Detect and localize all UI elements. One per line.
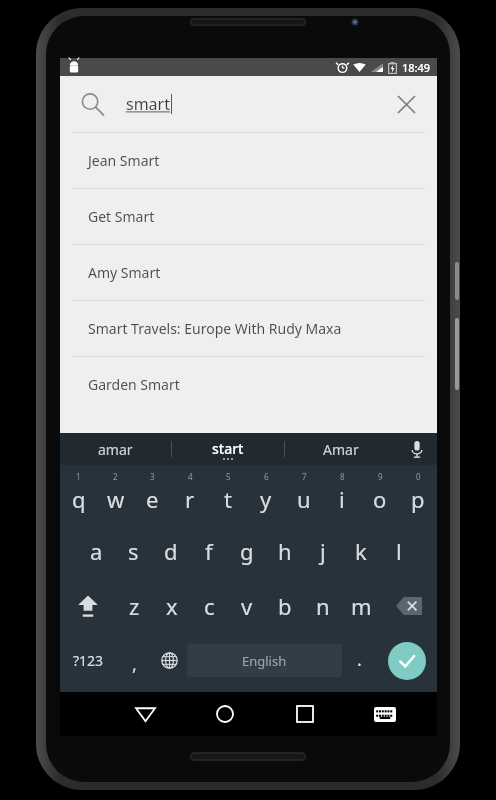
staticText: y <box>260 484 272 514</box>
staticText: u <box>297 484 311 514</box>
staticText: 3 <box>150 471 155 482</box>
button[interactable]: Get Smart <box>60 189 437 244</box>
button[interactable]: 8 <box>323 468 361 523</box>
staticText: v <box>241 591 253 621</box>
button[interactable]: 3 <box>134 468 171 523</box>
staticText: l <box>396 536 402 566</box>
button[interactable]: 5 <box>209 468 247 523</box>
button[interactable]: amar <box>60 433 171 465</box>
staticText: g <box>240 536 254 566</box>
button[interactable]: b <box>266 578 304 633</box>
staticText: p <box>411 484 425 514</box>
staticText: k <box>355 536 367 566</box>
staticText: , <box>132 652 137 677</box>
staticText: ?123 <box>73 651 104 670</box>
button[interactable]: Smart Travels: Europe With Rudy Maxa <box>60 301 437 356</box>
button[interactable]: v <box>228 578 266 633</box>
staticText: Get Smart <box>88 207 155 226</box>
staticText: i <box>339 484 345 514</box>
staticText: . <box>357 647 362 672</box>
staticText: 6 <box>264 471 269 482</box>
staticText: 4 <box>188 471 193 482</box>
staticText: t <box>224 484 232 514</box>
button[interactable]: 6 <box>247 468 285 523</box>
button[interactable]: c <box>190 578 228 633</box>
button[interactable]: j <box>304 523 342 578</box>
button[interactable]: Done <box>377 633 437 688</box>
button[interactable]: Recent apps <box>265 692 345 736</box>
button[interactable]: g <box>228 523 266 578</box>
button[interactable]: z <box>116 578 153 633</box>
button[interactable]: Search <box>60 76 437 132</box>
staticText: q <box>72 484 86 514</box>
button[interactable]: 0 <box>399 468 437 523</box>
staticText: Jean Smart <box>88 151 160 170</box>
button[interactable]: Back <box>105 692 185 736</box>
button[interactable]: 9 <box>361 468 399 523</box>
button[interactable]: Amy Smart <box>60 245 437 300</box>
button[interactable]: Voice input <box>397 433 437 465</box>
staticText: j <box>320 536 326 566</box>
button[interactable]: d <box>152 523 190 578</box>
button[interactable]: ?123 <box>60 633 117 688</box>
staticText: Smart Travels: Europe With Rudy Maxa <box>88 319 342 338</box>
staticText: a <box>90 536 103 566</box>
staticText: b <box>278 591 292 621</box>
staticText: s <box>128 536 139 566</box>
staticText: start <box>212 439 244 458</box>
staticText: 1 <box>76 471 81 482</box>
staticText: w <box>107 484 125 514</box>
staticText: x <box>166 591 178 621</box>
staticText: 7 <box>302 471 307 482</box>
staticText: r <box>185 484 195 514</box>
button[interactable]: 2 <box>97 468 134 523</box>
staticText: 0 <box>416 471 421 482</box>
button[interactable]: , <box>117 633 152 688</box>
button[interactable]: Amar <box>285 433 397 465</box>
staticText: d <box>164 536 178 566</box>
button[interactable]: 7 <box>285 468 323 523</box>
button[interactable]: Shift <box>60 578 116 633</box>
staticText: English <box>242 652 287 670</box>
staticText: 18:49 <box>402 60 431 75</box>
staticText: m <box>351 591 372 621</box>
button[interactable]: 4 <box>171 468 209 523</box>
staticText: h <box>278 536 292 566</box>
button[interactable]: x <box>153 578 190 633</box>
staticText: Amy Smart <box>88 263 161 282</box>
button[interactable]: English <box>187 644 342 677</box>
button[interactable]: start <box>172 433 284 465</box>
staticText: Garden Smart <box>88 375 180 394</box>
staticText: o <box>373 484 387 514</box>
staticText: e <box>146 484 159 514</box>
button[interactable]: Clear search <box>389 87 423 121</box>
staticText: z <box>129 591 140 621</box>
button[interactable]: m <box>342 578 380 633</box>
button[interactable]: Switch keyboard <box>345 692 425 736</box>
button[interactable]: Jean Smart <box>60 133 437 188</box>
staticText: Amar <box>323 440 359 459</box>
button[interactable]: Backspace <box>380 578 437 633</box>
staticText: 8 <box>340 471 345 482</box>
button[interactable]: k <box>342 523 380 578</box>
staticText: smart <box>126 93 170 115</box>
staticText: n <box>316 591 330 621</box>
staticText: 9 <box>378 471 383 482</box>
button[interactable]: . <box>342 633 377 688</box>
button[interactable]: a <box>78 523 115 578</box>
button[interactable]: Change language <box>152 633 187 688</box>
staticText: amar <box>98 440 133 459</box>
button[interactable]: f <box>190 523 228 578</box>
button[interactable]: Home <box>185 692 265 736</box>
staticText: 5 <box>226 471 231 482</box>
button[interactable]: h <box>266 523 304 578</box>
button[interactable]: s <box>115 523 152 578</box>
button[interactable]: n <box>304 578 342 633</box>
button[interactable]: Garden Smart <box>60 357 437 412</box>
staticText: 2 <box>113 471 118 482</box>
button[interactable]: 1 <box>60 468 97 523</box>
staticText: f <box>205 536 213 566</box>
other: Search <box>80 92 104 116</box>
button[interactable]: l <box>380 523 418 578</box>
staticText: c <box>204 591 215 621</box>
